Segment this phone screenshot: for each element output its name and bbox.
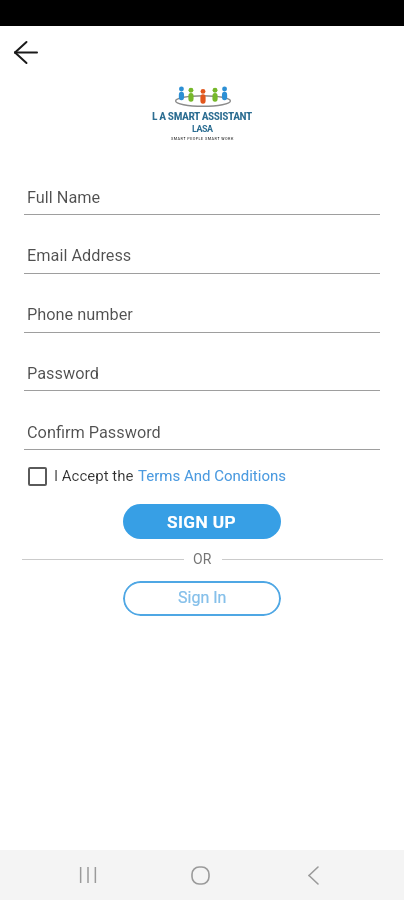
staticText: Full Name — [27, 188, 101, 207]
button[interactable]: SIGN UP — [123, 504, 281, 539]
button[interactable]: Recent apps — [60, 850, 115, 900]
staticText: Email Address — [27, 246, 132, 265]
staticText: I Accept the — [54, 467, 138, 485]
button[interactable]: Accept terms and conditions checkbox — [28, 467, 47, 486]
staticText: SMART PEOPLE SMART WORK — [171, 136, 234, 140]
button[interactable]: Sign In — [123, 581, 281, 616]
staticText: SIGN UP — [167, 512, 237, 532]
button[interactable]: Home — [173, 850, 228, 900]
staticText: L A SMART ASSISTANT — [152, 109, 252, 122]
button[interactable]: Back — [286, 850, 341, 900]
staticText: OR — [193, 551, 212, 567]
staticText: Confirm Password — [27, 423, 161, 442]
staticText: Sign In — [178, 588, 227, 607]
button[interactable]: Terms And Conditions — [138, 467, 286, 485]
button[interactable]: Back — [0, 26, 52, 78]
staticText: Phone number — [27, 305, 133, 324]
staticText: LASA — [192, 124, 213, 135]
staticText: Password — [27, 364, 99, 383]
